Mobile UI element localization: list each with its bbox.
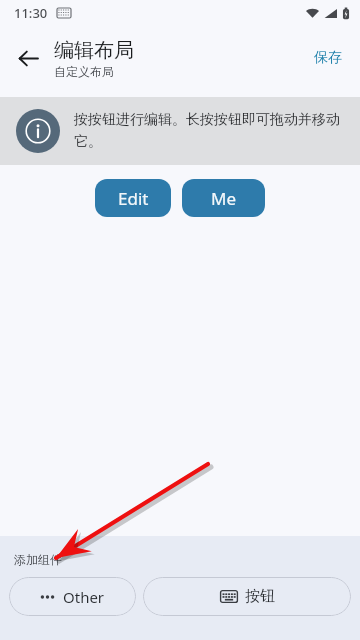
button[interactable]: Edit bbox=[95, 179, 171, 217]
button[interactable]: Back bbox=[6, 36, 50, 80]
staticText: 编辑布局 bbox=[54, 38, 134, 63]
button[interactable]: Other bbox=[9, 577, 136, 616]
button[interactable]: 保存 bbox=[300, 41, 356, 75]
staticText: Me bbox=[211, 187, 237, 210]
staticText: Edit bbox=[118, 187, 149, 210]
staticText: Other bbox=[63, 587, 105, 607]
staticText: 按按钮进行编辑。长按按钮即可拖动并移动它。 bbox=[74, 111, 342, 151]
staticText: 添加组件 bbox=[14, 552, 62, 567]
staticText: 自定义布局 bbox=[54, 64, 114, 79]
staticText: 按钮 bbox=[245, 587, 275, 606]
staticText: 11:30 bbox=[14, 4, 48, 22]
button[interactable]: 按钮 bbox=[143, 577, 351, 616]
staticText: 保存 bbox=[314, 49, 342, 67]
button[interactable]: Me bbox=[182, 179, 265, 217]
